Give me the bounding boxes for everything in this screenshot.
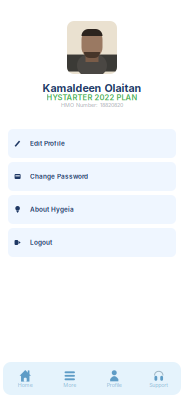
staticText: More — [63, 382, 76, 388]
button[interactable]: Change Password — [8, 162, 176, 191]
button[interactable]: More — [47, 370, 92, 387]
staticText: Profile — [107, 382, 122, 388]
button[interactable]: Support — [136, 370, 181, 387]
button[interactable]: Edit Profile — [8, 129, 176, 158]
button[interactable]: Logout — [8, 228, 176, 257]
staticText: About Hygeia — [30, 206, 74, 213]
staticText: Change Password — [30, 173, 88, 180]
button[interactable]: About Hygeia — [8, 195, 176, 224]
staticText: Kamaldeen Olaitan — [42, 81, 141, 94]
staticText: Support — [149, 382, 168, 388]
button[interactable]: Profile — [92, 370, 136, 387]
staticText: Logout — [30, 239, 52, 246]
button[interactable]: Home — [3, 370, 47, 387]
staticText: HMO Number: 18820820 — [61, 102, 123, 108]
staticText: Home — [18, 382, 33, 388]
staticText: HYSTARTER 2022 PLAN — [46, 93, 137, 102]
staticText: Edit Profile — [30, 140, 65, 147]
